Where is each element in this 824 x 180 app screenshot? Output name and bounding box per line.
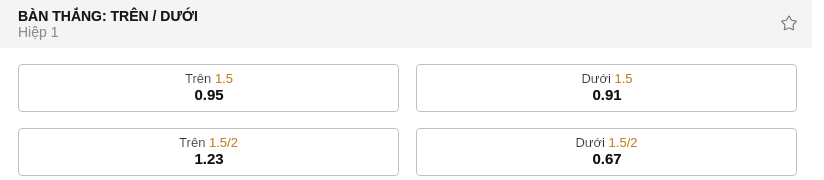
button[interactable]: Dưới 1.5 (416, 64, 797, 112)
staticText: 0.95 (194, 86, 224, 103)
button[interactable]: Dưới 1.5/2 (416, 128, 797, 176)
staticText: 0.67 (592, 150, 622, 167)
staticText: Trên 1.5/2 (179, 135, 238, 150)
staticText: 0.91 (592, 86, 622, 103)
staticText: 1.23 (194, 150, 224, 167)
button[interactable]: Trên 1.5/2 (18, 128, 399, 176)
staticText: BÀN THẮNG: TRÊN / DƯỚI (18, 8, 198, 24)
staticText: 1.23 (194, 150, 224, 167)
staticText: Hiệp 1 (18, 24, 59, 40)
staticText: 0.67 (592, 150, 622, 167)
staticText: Dưới 1.5 (581, 71, 633, 86)
staticText: 0.91 (592, 86, 622, 103)
staticText: Trên 1.5 (185, 71, 233, 86)
button[interactable]: Add to favourites (775, 9, 803, 37)
staticText: BÀN THẮNG: TRÊN / DƯỚI (18, 8, 198, 24)
staticText: 0.95 (194, 86, 224, 103)
button[interactable]: Trên 1.5 (18, 64, 399, 112)
staticText: Dưới 1.5/2 (575, 135, 638, 150)
